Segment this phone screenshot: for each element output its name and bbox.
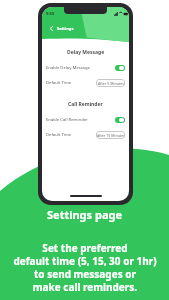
button[interactable]: After 15 Minutes bbox=[96, 131, 125, 139]
button[interactable]: Toggle bbox=[115, 65, 125, 71]
staticText: After 5 Minutes bbox=[98, 81, 124, 86]
staticText: Default Time bbox=[46, 80, 72, 86]
staticText: 9:55 bbox=[46, 11, 55, 17]
staticText: Enable Delay Message bbox=[46, 65, 90, 71]
button[interactable]: Default Time bbox=[42, 127, 129, 142]
button[interactable]: Enable Call Reminder bbox=[42, 112, 129, 127]
staticText: Call Reminder bbox=[68, 101, 103, 108]
button[interactable]: Toggle bbox=[115, 117, 125, 123]
staticText: Default Time bbox=[46, 132, 72, 138]
staticText: Enable Call Reminder bbox=[46, 117, 88, 123]
staticText: Delay Message bbox=[67, 49, 105, 56]
staticText: Set the preferred default time (5, 15, 3… bbox=[13, 241, 157, 294]
staticText: Settings page bbox=[47, 207, 123, 222]
button[interactable]: After 5 Minutes bbox=[96, 79, 125, 87]
button[interactable]: Enable Delay Message bbox=[42, 60, 129, 75]
staticText: After 15 Minutes bbox=[97, 133, 125, 138]
staticText: Settings bbox=[57, 26, 74, 31]
button[interactable]: Back bbox=[47, 24, 55, 32]
button[interactable]: Default Time bbox=[42, 75, 129, 90]
